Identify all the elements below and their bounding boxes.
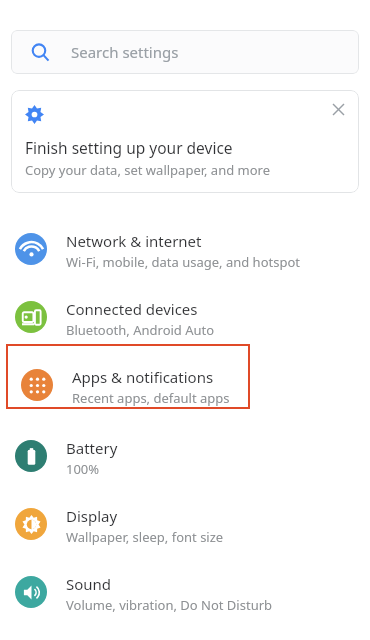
button[interactable]: Dismiss [325,96,351,122]
staticText: Apps & notifications [72,367,214,387]
staticText: Network & internet [66,231,202,251]
staticText: Display [66,506,118,526]
button[interactable]: Battery [0,409,370,483]
staticText: Wi-Fi, mobile, data usage, and hotspot [66,253,300,271]
button[interactable]: Apps & notifications [6,344,250,409]
staticText: Search settings [71,42,179,62]
staticText: Connected devices [66,299,198,319]
staticText: Copy your data, set wallpaper, and more [25,161,271,179]
button[interactable]: Sound [0,551,370,619]
button[interactable]: Connected devices [0,276,370,344]
button[interactable]: Display [0,483,370,551]
staticText: Battery [66,438,118,458]
button[interactable]: Search settings [11,30,359,74]
staticText: 100% [66,460,100,478]
staticText: Wallpaper, sleep, font size [66,528,224,546]
button[interactable]: Network & internet [0,208,370,276]
staticText: Bluetooth, Android Auto [66,321,215,339]
staticText: Finish setting up your device [25,137,233,158]
button[interactable]: Finish setting up your device [11,90,359,193]
staticText: Recent apps, default apps [72,389,230,407]
staticText: Sound [66,574,112,594]
staticText: Volume, vibration, Do Not Disturb [66,596,273,614]
